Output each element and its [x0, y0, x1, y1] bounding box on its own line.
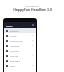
staticText: Sent	[10, 64, 16, 67]
staticText: 3	[32, 34, 34, 37]
staticText: 1	[32, 54, 34, 57]
staticText: 4	[32, 64, 34, 67]
staticText: Updates	[10, 44, 20, 47]
button[interactable]: Snoozed	[4, 58, 36, 63]
staticText: Forums	[10, 49, 19, 52]
staticText: Starred	[10, 54, 19, 57]
button[interactable]: Sent	[4, 63, 36, 68]
staticText: Snoozed	[10, 59, 20, 62]
button[interactable]: Promotions	[4, 38, 36, 43]
staticText: Primary	[10, 29, 19, 32]
staticText: HappyFun Headline 3.0	[13, 7, 52, 12]
staticText: Introducing	[25, 4, 39, 7]
staticText: Inbox	[6, 24, 13, 27]
staticText: 8	[32, 39, 34, 42]
button[interactable]: Updates	[4, 43, 36, 48]
button[interactable]: Forums	[4, 48, 36, 53]
staticText: Social	[10, 34, 17, 37]
staticText: Promotions	[10, 39, 24, 42]
staticText: 2	[32, 44, 34, 47]
button[interactable]: Inbox	[4, 22, 36, 28]
button[interactable]: Social	[4, 33, 36, 38]
button[interactable]: Primary	[4, 28, 36, 33]
button[interactable]: Starred	[4, 53, 36, 58]
